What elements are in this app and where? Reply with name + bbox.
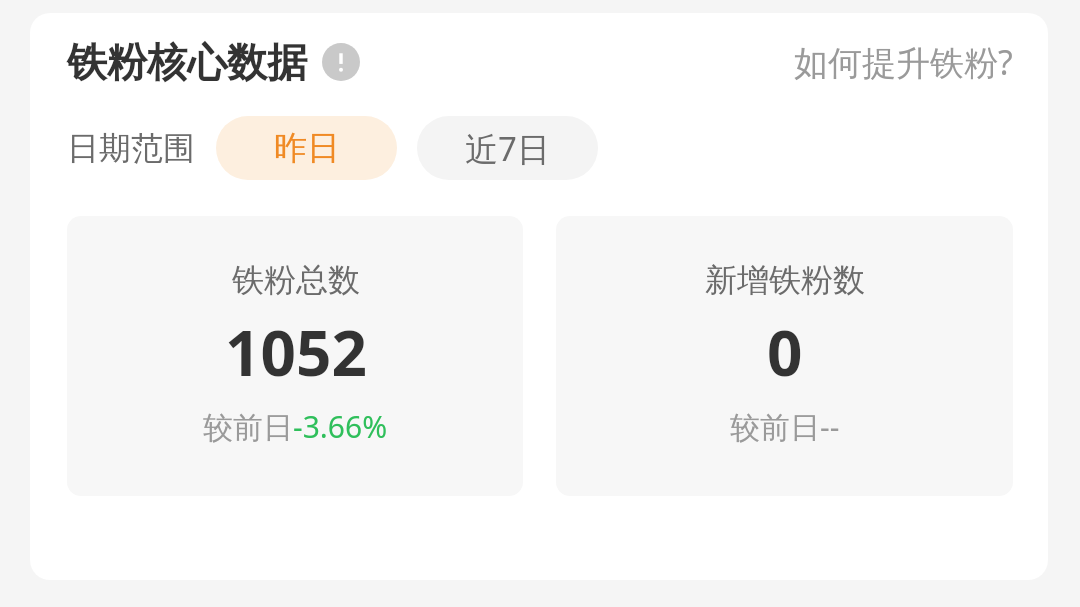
button[interactable]: 铁粉总数 [67, 216, 523, 496]
staticText: 铁粉核心数据 [67, 37, 307, 87]
button[interactable]: 说明 [322, 43, 360, 81]
staticText: 铁粉总数 [232, 260, 360, 300]
button[interactable]: 如何提升铁粉? [794, 39, 1013, 85]
staticText: 1052 [225, 310, 367, 394]
button[interactable]: 新增铁粉数 [556, 216, 1013, 496]
staticText: 0 [767, 310, 803, 394]
staticText: 较前日-3.66% [203, 406, 388, 447]
staticText: 昨日 [274, 127, 340, 169]
staticText: 较前日-- [730, 406, 840, 447]
staticText: 新增铁粉数 [705, 260, 865, 300]
staticText: 日期范围 [67, 128, 195, 168]
button[interactable]: 昨日 [216, 116, 397, 180]
button[interactable]: 近7日 [417, 116, 598, 180]
staticText: 近7日 [465, 126, 550, 171]
